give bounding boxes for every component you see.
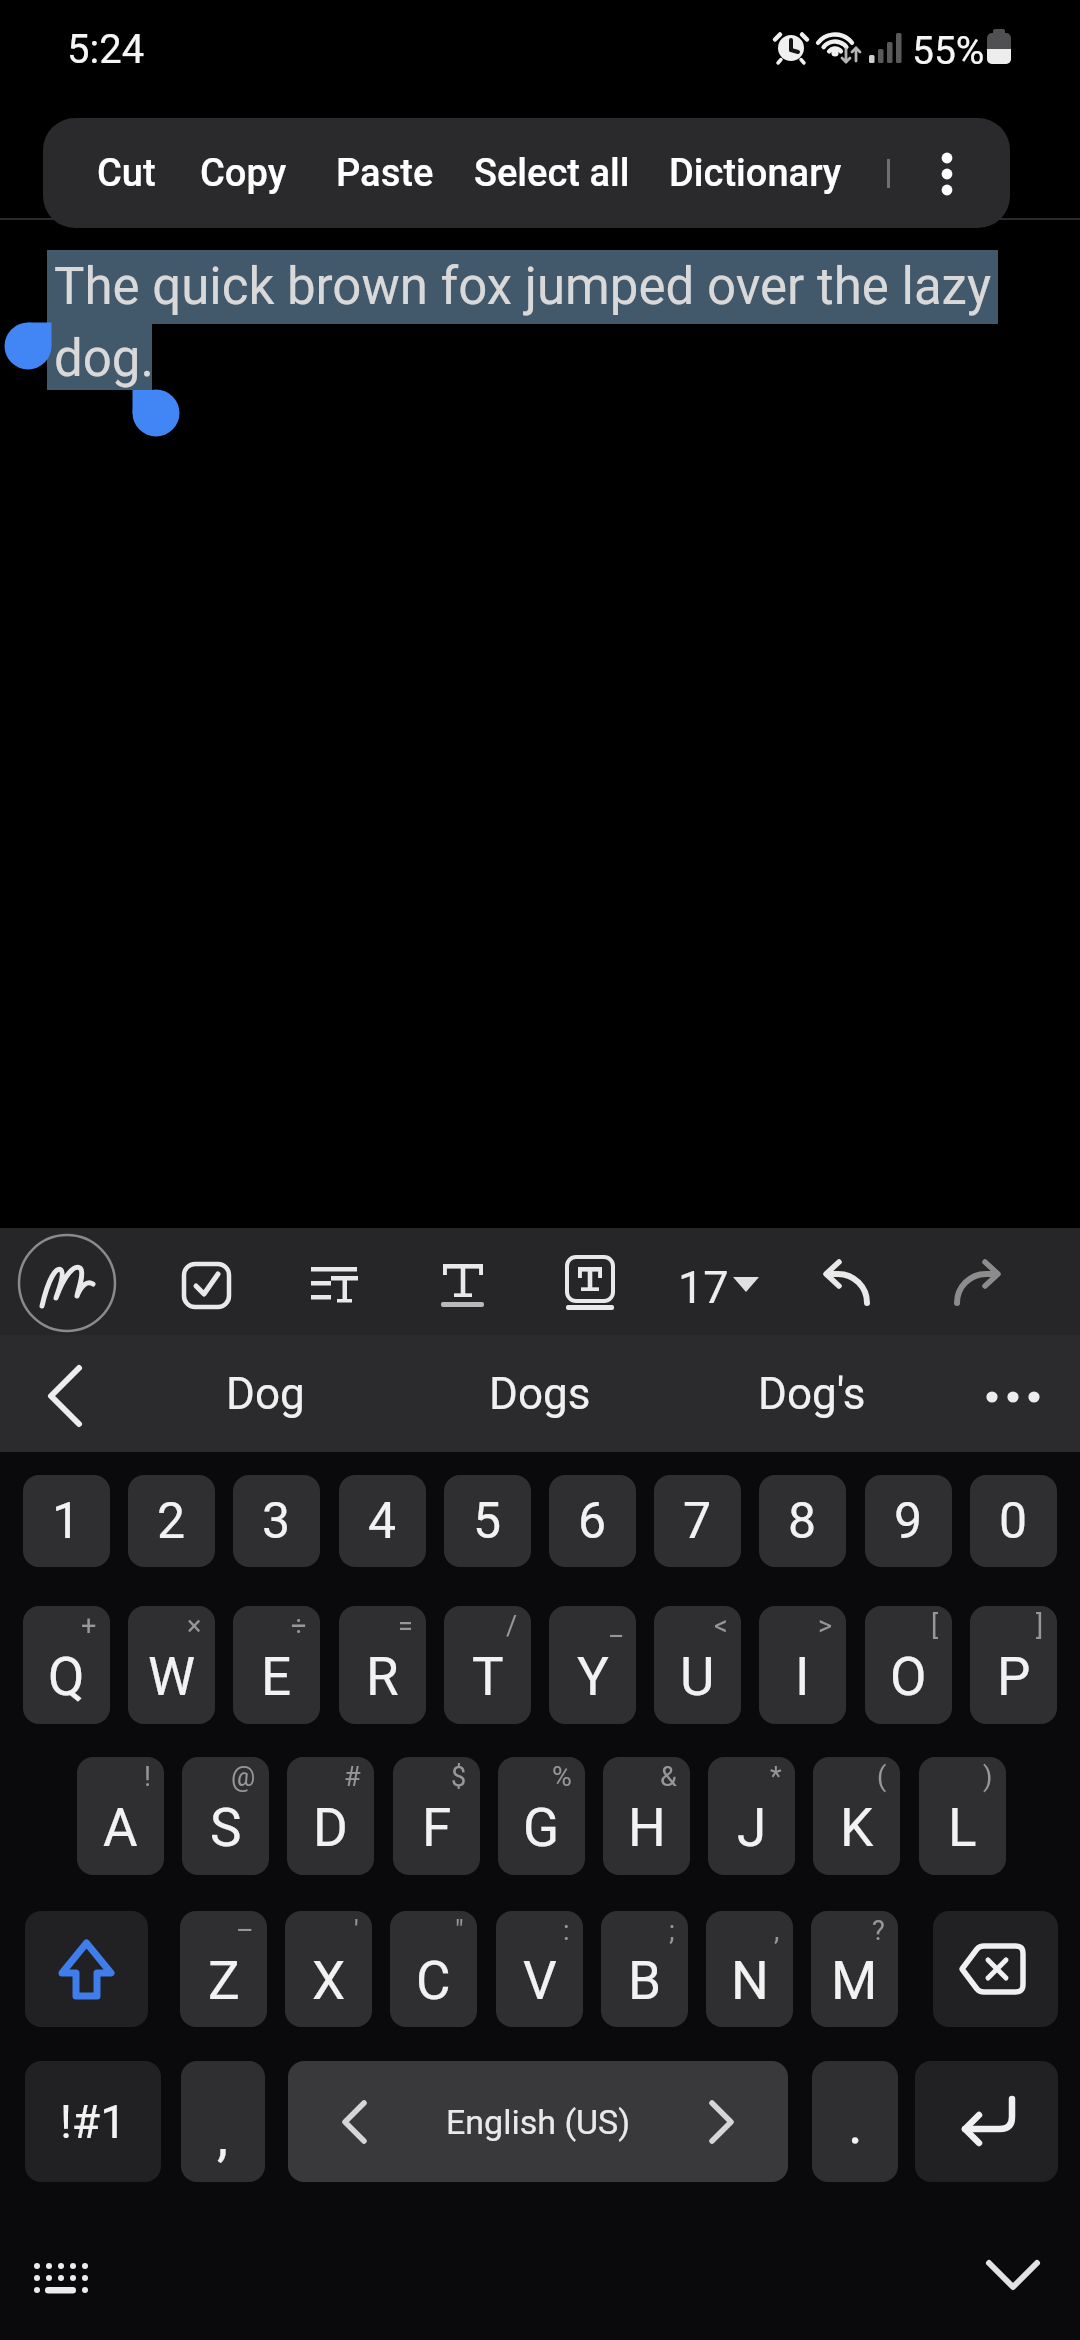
button[interactable]: [975, 2240, 1055, 2310]
button[interactable]: 8: [759, 1475, 846, 1567]
staticText: &: [660, 1761, 677, 1793]
button[interactable]: [798, 1230, 898, 1334]
button[interactable]: [25, 1911, 148, 2027]
staticText: /: [506, 1610, 518, 1642]
button[interactable]: [917, 118, 977, 228]
button[interactable]: (: [813, 1757, 900, 1875]
button[interactable]: Dog's: [727, 1335, 897, 1452]
button[interactable]: >: [759, 1606, 846, 1724]
button[interactable]: [666, 1230, 766, 1334]
staticText: _: [610, 1610, 623, 1642]
button[interactable]: 1: [23, 1475, 110, 1567]
staticText: P: [997, 1646, 1031, 1708]
staticText: .: [848, 2091, 863, 2157]
button[interactable]: !: [77, 1757, 164, 1875]
button[interactable]: @: [182, 1757, 269, 1875]
button[interactable]: ,: [706, 1911, 793, 2027]
staticText: E: [261, 1646, 292, 1708]
button[interactable]: _: [549, 1606, 636, 1724]
button[interactable]: =: [339, 1606, 426, 1724]
staticText: F: [422, 1797, 452, 1859]
staticText: Cut: [97, 151, 156, 196]
button[interactable]: ]: [970, 1606, 1057, 1724]
button[interactable]: Dog: [180, 1335, 350, 1452]
button[interactable]: ;: [601, 1911, 688, 2027]
button[interactable]: 5: [444, 1475, 531, 1567]
button[interactable]: /: [444, 1606, 531, 1724]
button[interactable]: <: [654, 1606, 741, 1724]
button[interactable]: $: [393, 1757, 480, 1875]
button[interactable]: 3: [233, 1475, 320, 1567]
staticText: S: [210, 1797, 242, 1859]
button[interactable]: Paste: [325, 118, 445, 228]
staticText: 8: [788, 1492, 817, 1551]
staticText: ): [983, 1761, 993, 1793]
staticText: 1: [52, 1492, 81, 1551]
button[interactable]: ÷: [233, 1606, 320, 1724]
button[interactable]: ": [390, 1911, 477, 2027]
button[interactable]: –: [180, 1911, 267, 2027]
button[interactable]: ?: [811, 1911, 898, 2027]
button[interactable]: [: [865, 1606, 952, 1724]
button[interactable]: Dictionary: [663, 118, 847, 228]
button[interactable]: [933, 1911, 1058, 2027]
button[interactable]: +: [23, 1606, 110, 1724]
staticText: N: [731, 1950, 769, 2012]
staticText: *: [770, 1761, 782, 1793]
button[interactable]: 4: [339, 1475, 426, 1567]
button[interactable]: 7: [654, 1475, 741, 1567]
button[interactable]: ×: [128, 1606, 215, 1724]
button[interactable]: [412, 1230, 512, 1334]
staticText: ;: [669, 1915, 675, 1947]
button[interactable]: &: [603, 1757, 690, 1875]
staticText: V: [523, 1950, 557, 2012]
staticText: :: [563, 1915, 570, 1947]
staticText: L: [948, 1797, 977, 1859]
button[interactable]: 6: [549, 1475, 636, 1567]
button[interactable]: [157, 1230, 257, 1334]
staticText: B: [628, 1950, 662, 2012]
staticText: –: [236, 1915, 254, 1947]
button[interactable]: 0: [970, 1475, 1057, 1567]
staticText: >: [818, 1610, 833, 1642]
staticText: Dog's: [758, 1368, 866, 1420]
button[interactable]: Cut: [66, 118, 186, 228]
staticText: The quick brown fox jumped over the lazy: [54, 257, 992, 317]
button[interactable]: [540, 1230, 640, 1334]
button[interactable]: ,: [181, 2061, 265, 2182]
button[interactable]: [10, 2245, 110, 2315]
button[interactable]: Select all: [462, 118, 642, 228]
staticText: 2: [157, 1492, 186, 1551]
button[interactable]: :: [496, 1911, 583, 2027]
button[interactable]: ': [285, 1911, 372, 2027]
staticText: T: [472, 1646, 504, 1708]
button[interactable]: [928, 1230, 1028, 1334]
button[interactable]: [17, 1230, 117, 1334]
staticText: Dictionary: [669, 151, 842, 196]
staticText: Dog: [226, 1368, 305, 1420]
staticText: %: [552, 1761, 572, 1793]
staticText: Copy: [200, 151, 287, 196]
staticText: I: [795, 1646, 810, 1708]
button[interactable]: 2: [128, 1475, 215, 1567]
staticText: 5: [473, 1492, 502, 1551]
button[interactable]: Dogs: [455, 1335, 625, 1452]
button[interactable]: 9: [865, 1475, 952, 1567]
button[interactable]: [284, 1230, 384, 1334]
button[interactable]: .: [812, 2061, 898, 2182]
button[interactable]: Copy: [183, 118, 303, 228]
button[interactable]: *: [708, 1757, 795, 1875]
button[interactable]: [963, 1345, 1063, 1445]
button[interactable]: !#1: [25, 2061, 161, 2182]
staticText: ,: [217, 2103, 229, 2169]
button[interactable]: %: [498, 1757, 585, 1875]
staticText: #: [344, 1761, 361, 1793]
button[interactable]: English (US): [288, 2061, 788, 2182]
button[interactable]: #: [287, 1757, 374, 1875]
button[interactable]: [25, 1345, 125, 1445]
staticText: A: [103, 1797, 138, 1859]
staticText: ,: [774, 1915, 780, 1947]
staticText: K: [840, 1797, 874, 1859]
button[interactable]: [915, 2061, 1058, 2182]
button[interactable]: ): [919, 1757, 1006, 1875]
